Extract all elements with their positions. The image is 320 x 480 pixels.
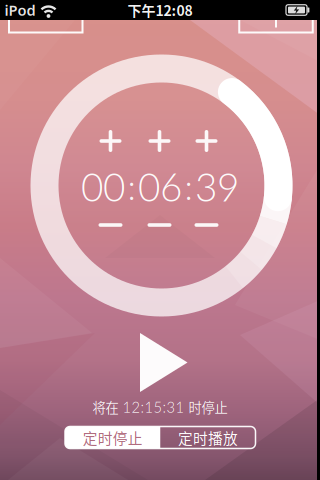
staticText: : (184, 166, 192, 207)
button[interactable]: 减少分钟 (147, 219, 171, 231)
button[interactable]: 增加秒 (195, 130, 217, 152)
staticText: 00 (81, 163, 125, 210)
staticText: 06 (138, 163, 182, 210)
staticText: 将在 (92, 397, 118, 417)
staticText: iPod (4, 0, 35, 20)
button[interactable]: 增加分钟 (148, 130, 170, 152)
button[interactable]: 添加 (238, 20, 314, 34)
button[interactable]: 减少小时 (98, 219, 122, 231)
button[interactable]: 增加小时 (99, 130, 121, 152)
button[interactable]: 播放列表 (8, 20, 83, 34)
staticText: 定时停止 (83, 427, 143, 448)
button[interactable]: 定时播放 (160, 426, 255, 448)
button[interactable]: 播放 (140, 333, 187, 392)
staticText: 定时播放 (178, 427, 238, 448)
button[interactable]: 定时停止 (65, 426, 160, 448)
staticText: 时停止 (188, 397, 227, 417)
staticText: 39 (195, 163, 239, 210)
staticText: 下午12:08 (127, 0, 192, 20)
button[interactable]: 减少秒 (194, 219, 218, 231)
staticText: : (127, 166, 135, 207)
staticText: 12:15:31 (122, 398, 184, 416)
